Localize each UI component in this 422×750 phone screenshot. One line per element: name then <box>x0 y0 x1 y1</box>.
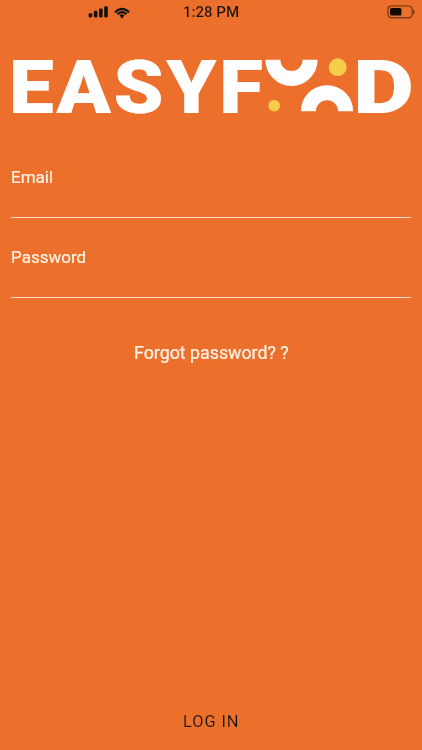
staticText: 1:28 PM <box>183 3 240 21</box>
staticText: Password <box>11 247 87 267</box>
button[interactable]: Forgot password? ? <box>124 337 299 368</box>
staticText: Forgot password? ? <box>134 342 289 363</box>
button[interactable]: Email <box>0 167 422 218</box>
staticText: LOG IN <box>183 712 240 731</box>
staticText: EASYF <box>9 44 266 131</box>
staticText: D <box>353 44 418 131</box>
button[interactable]: Password <box>0 247 422 298</box>
staticText: Email <box>11 167 54 187</box>
other: Battery level <box>388 5 418 20</box>
button[interactable]: LOG IN <box>159 703 264 740</box>
other: Signal strength and Wi-Fi <box>88 5 132 19</box>
